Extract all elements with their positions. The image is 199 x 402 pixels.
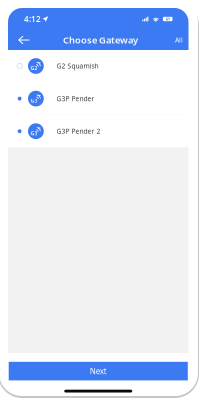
button[interactable]: G3 xyxy=(8,83,188,115)
button[interactable]: G2 xyxy=(8,50,188,82)
staticText: 61 xyxy=(166,16,170,21)
button[interactable]: Next xyxy=(9,362,188,380)
staticText: G2 xyxy=(30,64,37,71)
button[interactable]: Back xyxy=(14,30,34,50)
staticText: G3 xyxy=(30,97,37,104)
staticText: Choose Gateway xyxy=(63,34,138,46)
button[interactable]: All xyxy=(172,30,186,50)
staticText: All xyxy=(175,36,183,44)
staticText: G3P Pender 2 xyxy=(57,127,101,136)
button[interactable]: G3 xyxy=(8,115,188,147)
staticText: Next xyxy=(90,366,107,376)
staticText: 4:12 xyxy=(24,14,41,24)
staticText: G3P Pender xyxy=(57,94,95,103)
staticText: G3 xyxy=(30,130,37,137)
staticText: G2 Squamish xyxy=(57,62,99,70)
